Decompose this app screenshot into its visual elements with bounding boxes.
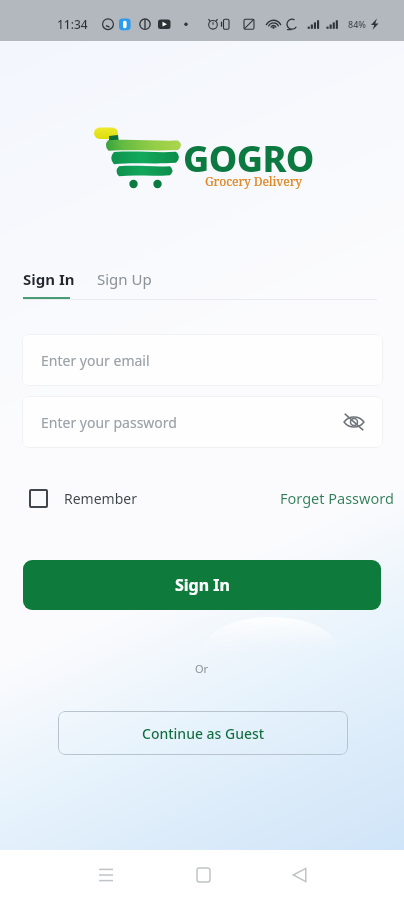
staticText: Or [195,661,209,676]
button[interactable]: Recent apps [86,855,126,895]
button[interactable]: Home [183,855,223,895]
button[interactable]: Back [279,855,319,895]
button[interactable]: Enter your password [22,396,383,448]
staticText: Sign In [175,574,230,596]
button[interactable]: Forget Password [280,482,394,514]
button[interactable]: Sign In [23,269,75,289]
staticText: GOGRO [183,134,314,183]
staticText: Continue as Guest [142,724,265,743]
staticText: 84% [348,18,366,30]
button[interactable]: Remember [29,483,137,514]
staticText: Grocery Delivery [205,173,302,189]
staticText: Remember [64,489,137,508]
staticText: Enter your password [41,413,177,432]
staticText: 11:34 [57,16,88,32]
button[interactable]: Continue as Guest [58,711,348,755]
staticText: Enter your email [41,351,150,370]
button[interactable]: Show password [341,409,367,435]
button[interactable]: Sign In [23,560,381,610]
button[interactable]: Sign Up [97,269,152,289]
button[interactable]: Enter your email [22,334,383,386]
